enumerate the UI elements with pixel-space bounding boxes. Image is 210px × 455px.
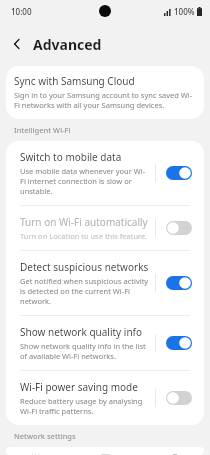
staticText: Wi-Fi power saving mode: [20, 380, 138, 394]
staticText: Intelligent Wi-Fi: [14, 125, 71, 135]
staticText: Detect suspicious networks: [20, 260, 149, 274]
button[interactable]: Turn on Wi-Fi automatically: [6, 206, 204, 250]
staticText: Show network quality info in the list of…: [20, 341, 149, 361]
button[interactable]: Detect suspicious networks: [6, 251, 204, 315]
staticText: Turn on Location to use this feature.: [20, 231, 148, 241]
staticText: Sync with Samsung Cloud: [14, 74, 135, 88]
button[interactable]: Turn on Wi-Fi automatically: [164, 219, 194, 237]
button[interactable]: Switch to mobile data: [164, 164, 194, 182]
staticText: Show network quality info: [20, 325, 143, 339]
button[interactable]: Wi-Fi power saving mode: [6, 371, 204, 425]
button[interactable]: Show network quality info: [164, 334, 194, 352]
staticText: Network settings: [14, 431, 76, 441]
button[interactable]: Detect suspicious networks: [164, 274, 194, 292]
staticText: 100%: [174, 6, 195, 17]
button[interactable]: Switch to mobile data: [6, 141, 204, 205]
staticText: Use mobile data whenever your Wi-Fi inte…: [20, 166, 149, 196]
staticText: 10:00: [11, 6, 32, 17]
staticText: Sign in to your Samsung account to sync …: [14, 90, 194, 110]
staticText: Switch to mobile data: [20, 150, 122, 164]
button[interactable]: Sync with Samsung Cloud: [6, 66, 204, 119]
staticText: Get notified when suspicious activity is…: [20, 276, 149, 306]
button[interactable]: Manage networks: [6, 447, 204, 455]
staticText: Reduce battery usage by analysing Wi-Fi …: [20, 396, 149, 416]
button[interactable]: Show network quality info: [6, 316, 204, 370]
button[interactable]: Wi-Fi power saving mode: [164, 389, 194, 407]
button[interactable]: Back: [6, 33, 28, 55]
staticText: Turn on Wi-Fi automatically: [20, 215, 148, 229]
staticText: Advanced: [33, 35, 102, 54]
